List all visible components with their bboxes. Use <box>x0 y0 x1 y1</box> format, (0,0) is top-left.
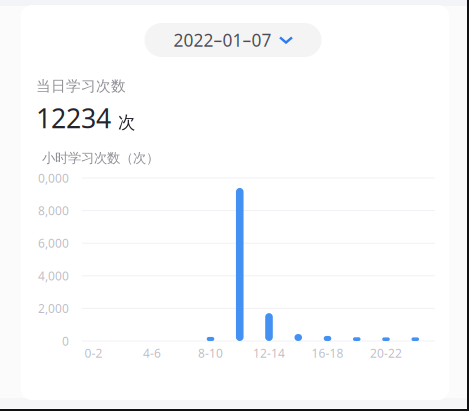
staticText: 小时学习次数（次） <box>42 150 159 166</box>
staticText: 12234 <box>36 100 111 136</box>
button[interactable]: 2022–01–07 <box>144 23 321 57</box>
staticText: 2022–01–07 <box>173 28 271 51</box>
staticText: 4,000 <box>38 268 69 284</box>
staticText: 2,000 <box>38 300 69 316</box>
staticText: 0 <box>62 333 69 349</box>
staticText: 次 <box>118 112 135 133</box>
staticText: 4-6 <box>143 345 161 361</box>
staticText: 16-18 <box>311 345 343 361</box>
staticText: 0,000 <box>38 170 69 186</box>
staticText: 12-14 <box>253 345 285 361</box>
staticText: 8-10 <box>198 345 223 361</box>
staticText: 20-22 <box>370 345 402 361</box>
staticText: 当日学习次数 <box>36 77 126 95</box>
staticText: 8,000 <box>38 203 69 218</box>
staticText: 0-2 <box>84 345 102 361</box>
staticText: 6,000 <box>38 235 69 251</box>
